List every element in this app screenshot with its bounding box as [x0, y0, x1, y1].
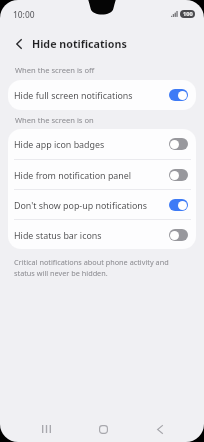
button[interactable]: Back — [145, 414, 175, 442]
button[interactable]: Don't show pop-up notifications — [8, 190, 196, 219]
staticText: Hide from notification panel — [14, 169, 132, 181]
staticText: 10:00 — [13, 9, 35, 20]
staticText: Critical notifications about phone activ… — [14, 257, 184, 278]
button[interactable]: Hide from notification panel — [8, 160, 196, 189]
staticText: 100 — [183, 10, 193, 18]
staticText: When the screen is off — [15, 65, 95, 75]
staticText: Hide full screen notifications — [14, 89, 133, 101]
button[interactable]: Hide app icon badges — [8, 129, 196, 159]
staticText: When the screen is on — [15, 115, 94, 125]
button[interactable]: Back — [8, 33, 30, 55]
button[interactable]: Home — [88, 414, 118, 442]
staticText: Don't show pop-up notifications — [14, 199, 148, 211]
staticText: Hide notifications — [32, 37, 127, 52]
button[interactable]: Recents — [31, 414, 61, 442]
button[interactable]: Hide full screen notifications — [8, 80, 196, 110]
staticText: Hide status bar icons — [14, 229, 102, 241]
staticText: Hide app icon badges — [14, 138, 105, 150]
button[interactable]: Hide status bar icons — [8, 220, 196, 249]
